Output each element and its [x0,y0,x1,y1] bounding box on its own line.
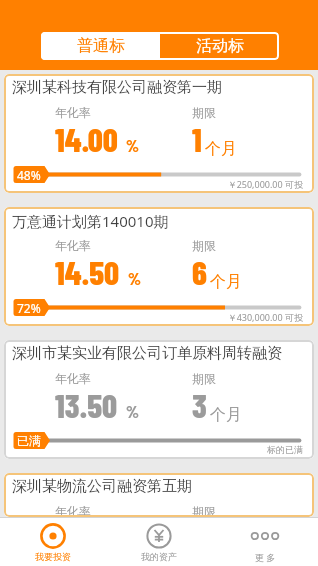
staticText: 72% [17,300,41,316]
staticText: 深圳某物流公司融资第五期 [12,477,192,496]
staticText: 我要投资 [35,551,71,562]
staticText: 6 [192,252,207,292]
staticText: 48% [17,167,41,183]
staticText: % [126,401,139,421]
staticText: 万意通计划第140010期 [12,211,169,231]
staticText: 个月 [210,405,242,425]
button[interactable]: 深圳某科技有限公司融资第一期 [4,74,314,193]
staticText: 年化率 [55,504,91,517]
staticText: 已满 [17,433,41,448]
staticText: 期限 [192,504,216,517]
staticText: 3 [192,385,207,425]
staticText: 14.50 [55,252,120,292]
button[interactable]: 我的资产 [106,518,212,566]
staticText: 深圳某科技有限公司融资第一期 [12,78,222,97]
button[interactable]: 更 多 [212,518,318,566]
staticText: 期限 [192,371,216,386]
staticText: 我的资产 [141,551,177,562]
staticText: 普通标 [77,36,125,56]
staticText: 年化率 [55,238,91,253]
staticText: 1 [192,119,202,159]
button[interactable]: 深圳市某实业有限公司订单原料周转融资 [4,340,314,459]
staticText: 14.00 [55,119,118,159]
staticText: 深圳市某实业有限公司订单原料周转融资 [12,344,282,363]
staticText: % [128,268,141,288]
staticText: ￥430,000.00 可投 [4,311,303,323]
staticText: 标的已满 [4,444,303,455]
staticText: 个月 [210,272,242,292]
staticText: 更 多 [255,551,276,563]
button[interactable]: 万意通计划第140010期 [4,207,314,326]
staticText: 期限 [192,238,216,253]
button[interactable]: 深圳某物流公司融资第五期 [4,473,314,517]
staticText: 期限 [192,105,216,120]
button[interactable]: 我要投资 [0,518,106,566]
staticText: 活动标 [196,36,244,56]
button[interactable]: 普通标 [41,32,160,60]
staticText: 13.50 [55,385,118,425]
button[interactable]: 活动标 [160,32,279,60]
staticText: ￥250,000.00 可投 [4,178,303,190]
staticText: % [126,135,139,155]
staticText: 个月 [205,139,237,159]
staticText: 年化率 [55,371,91,386]
staticText: 年化率 [55,105,91,120]
